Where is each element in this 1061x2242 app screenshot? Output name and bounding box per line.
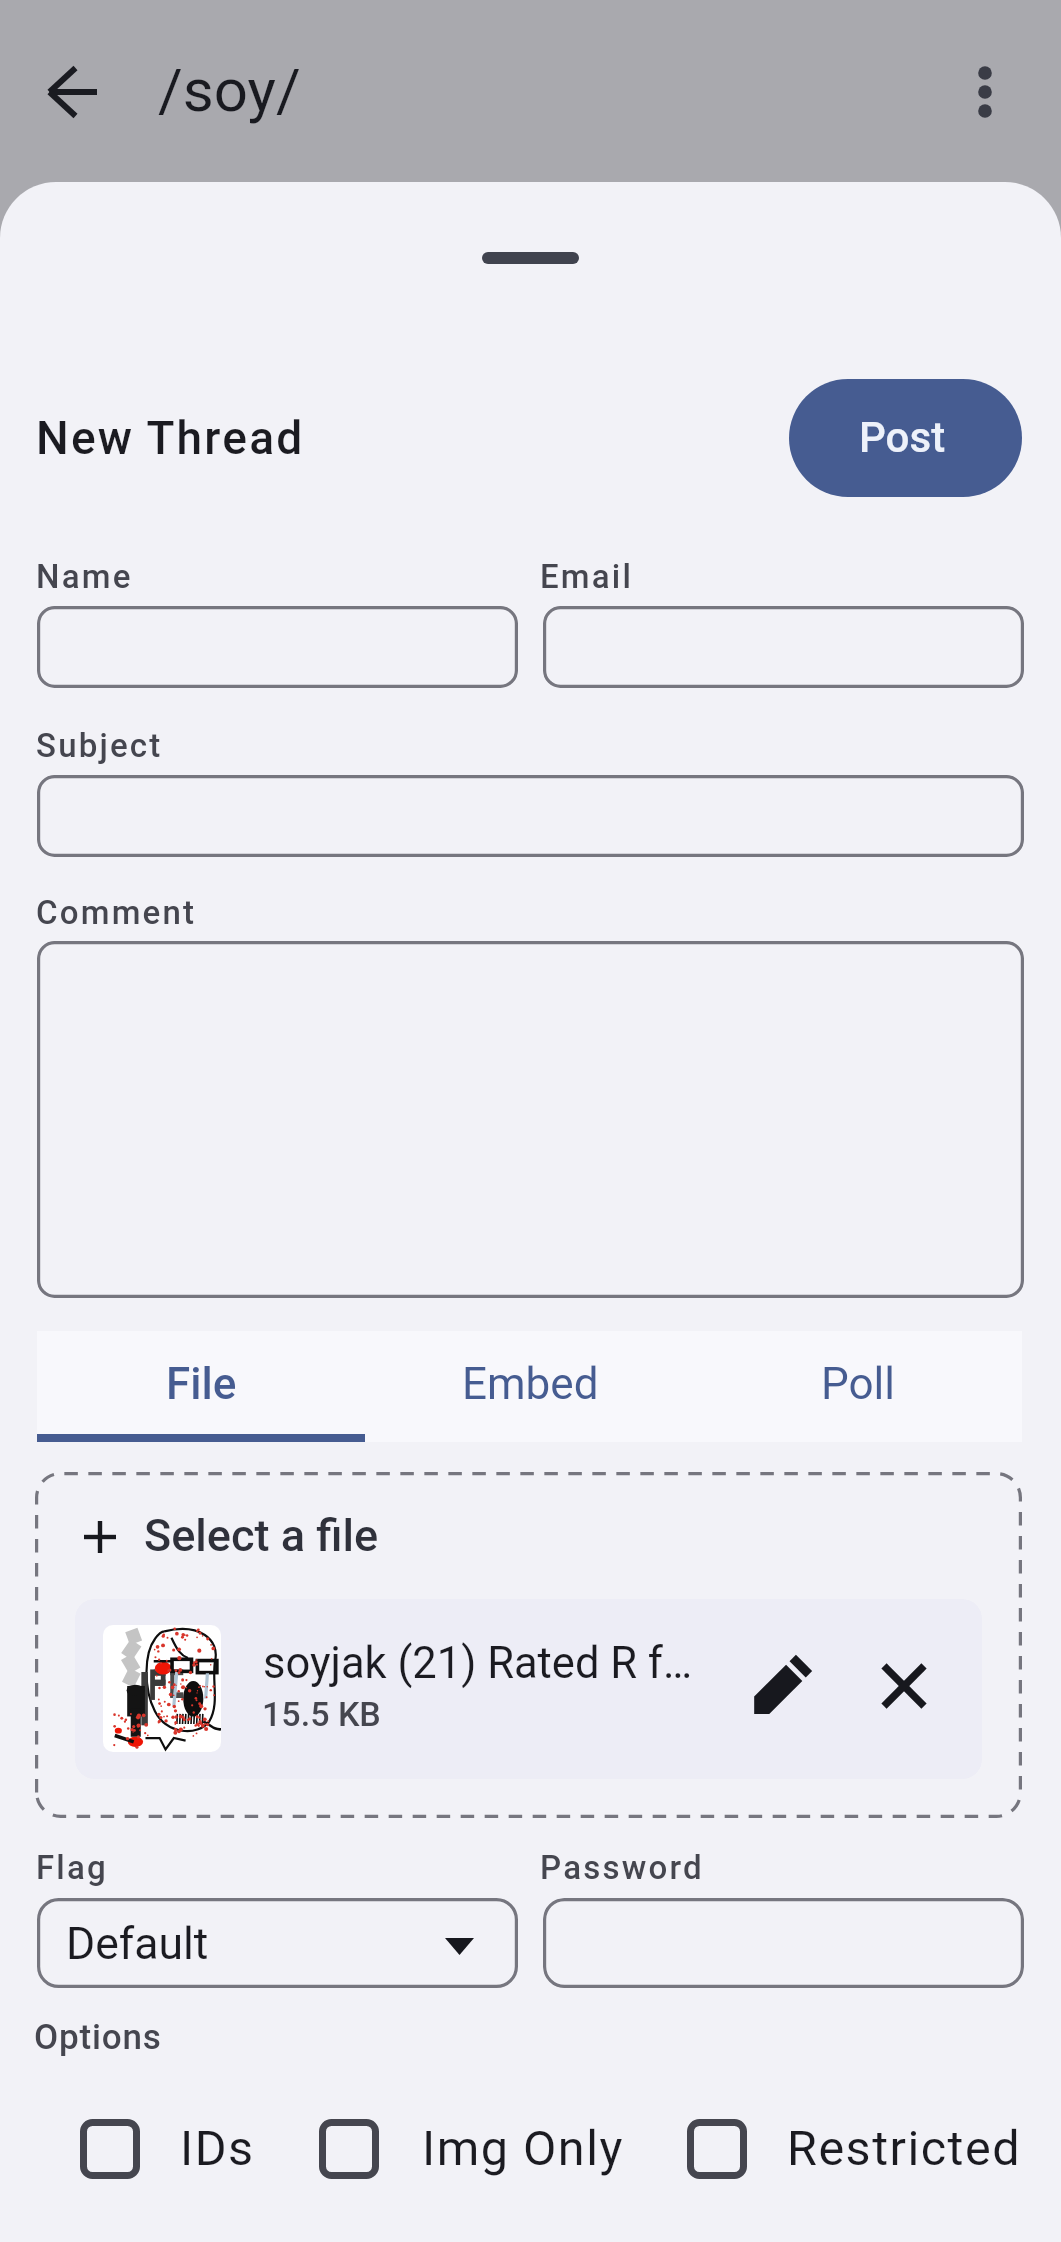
staticText: soyjak (21) Rated R f…	[263, 1638, 693, 1689]
staticText: /soy/	[158, 55, 301, 125]
staticText: Img Only	[422, 2120, 624, 2177]
button[interactable]: Poll	[694, 1331, 1022, 1442]
button[interactable]	[543, 606, 1024, 688]
staticText: Email	[540, 557, 634, 596]
button[interactable]: Remove file	[854, 1636, 954, 1736]
staticText: Password	[540, 1848, 704, 1887]
button[interactable]: Back	[36, 56, 108, 128]
button[interactable]	[37, 606, 518, 688]
staticText: 15.5 KB	[262, 1694, 381, 1734]
staticText: Select a file	[144, 1509, 379, 1562]
button[interactable]: Embed	[366, 1331, 694, 1442]
button[interactable]: Post	[789, 379, 1022, 497]
button[interactable]	[37, 1898, 518, 1988]
button[interactable]: Edit file	[75, 1599, 982, 1779]
button[interactable]	[70, 1502, 490, 1572]
button[interactable]: File	[37, 1331, 366, 1442]
staticText: New Thread	[36, 411, 305, 465]
staticText: Name	[36, 557, 133, 596]
button[interactable]	[37, 941, 1024, 1298]
staticText: File	[166, 1358, 237, 1410]
staticText: Comment	[36, 893, 197, 932]
staticText: Flag	[36, 1848, 108, 1887]
button[interactable]	[669, 2104, 1024, 2196]
staticText: IDs	[180, 2120, 255, 2177]
staticText: Restricted	[787, 2120, 1022, 2177]
staticText: Embed	[462, 1358, 599, 1410]
staticText: Default	[66, 1918, 209, 1970]
button[interactable]	[62, 2104, 252, 2196]
staticText: Post	[859, 413, 946, 462]
staticText: Options	[34, 2017, 162, 2058]
button[interactable]	[543, 1898, 1024, 1988]
button[interactable]: Edit file	[727, 1630, 845, 1748]
button[interactable]	[301, 2104, 641, 2196]
button[interactable]: More options	[949, 56, 1021, 128]
button[interactable]	[37, 775, 1024, 857]
staticText: Subject	[36, 726, 163, 765]
staticText: Poll	[821, 1358, 895, 1410]
